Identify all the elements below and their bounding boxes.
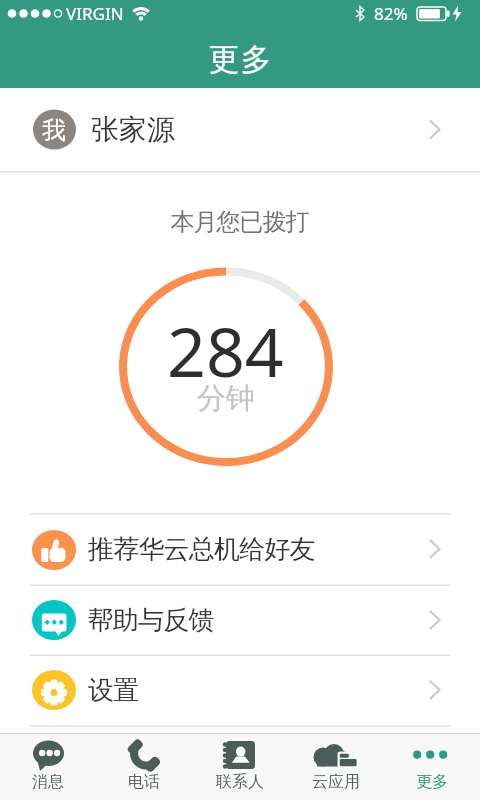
staticText: 帮助与反馈 — [88, 604, 214, 637]
button[interactable]: 更多 — [384, 733, 480, 800]
staticText: 更多 — [208, 40, 272, 79]
button[interactable]: 消息 — [0, 733, 96, 800]
staticText: 本月您已拨打 — [171, 207, 309, 237]
staticText: 联系人 — [216, 772, 264, 792]
staticText: 更多 — [416, 772, 448, 792]
button[interactable]: 推荐华云总机给好友 — [0, 513, 480, 585]
button[interactable]: 设置 — [0, 655, 480, 726]
button[interactable]: 电话 — [96, 733, 192, 800]
staticText: 张家源 — [91, 112, 175, 147]
button[interactable]: 我 — [0, 88, 480, 171]
button[interactable]: 帮助与反馈 — [0, 585, 480, 655]
staticText: 我 — [42, 115, 66, 145]
staticText: 设置 — [88, 674, 139, 707]
staticText: VIRGIN — [66, 2, 124, 25]
staticText: 分钟 — [197, 380, 255, 414]
staticText: 云应用 — [312, 772, 360, 792]
button[interactable]: 云应用 — [288, 733, 384, 800]
button[interactable]: 联系人 — [192, 733, 288, 800]
staticText: 82% — [374, 2, 408, 25]
staticText: 284 — [167, 304, 284, 386]
staticText: 消息 — [32, 772, 64, 792]
staticText: 电话 — [128, 772, 160, 792]
staticText: 推荐华云总机给好友 — [88, 533, 315, 566]
